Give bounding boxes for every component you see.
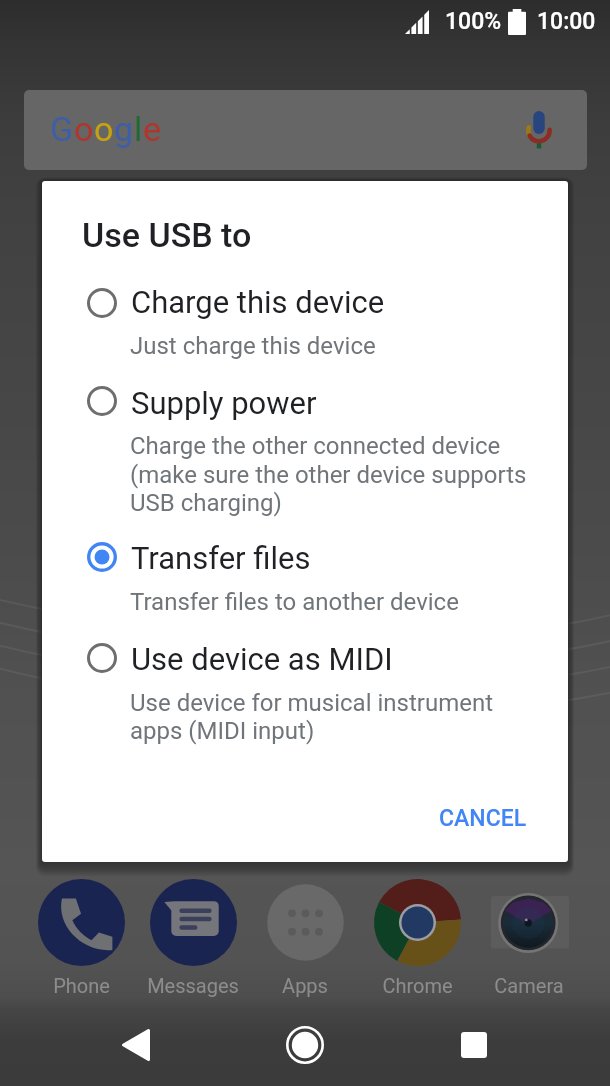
staticText: USB charging) xyxy=(130,489,282,517)
other: Voice search xyxy=(526,111,552,147)
staticText: e xyxy=(143,109,162,149)
staticText: Supply power xyxy=(131,385,317,421)
staticText: Messages xyxy=(147,974,239,997)
staticText: CANCEL xyxy=(439,805,527,832)
staticText: Charge the other connected device xyxy=(130,432,501,460)
button[interactable]: Home xyxy=(272,1012,338,1078)
button[interactable]: Phone xyxy=(25,878,137,997)
staticText: o xyxy=(74,109,94,149)
staticText: Apps xyxy=(282,974,328,997)
button[interactable]: Camera xyxy=(473,878,585,997)
staticText: Transfer files xyxy=(131,540,311,576)
staticText: l xyxy=(134,109,143,149)
button[interactable]: Back xyxy=(103,1012,169,1078)
other: Apps xyxy=(262,879,349,966)
staticText: 100% xyxy=(445,8,502,35)
staticText: Chrome xyxy=(382,974,453,997)
staticText: g xyxy=(114,109,134,149)
button[interactable]: Transfer files xyxy=(42,532,568,626)
button[interactable]: Messages xyxy=(137,878,249,997)
staticText: Transfer files to another device xyxy=(130,588,459,616)
staticText: o xyxy=(94,109,114,149)
button[interactable]: G xyxy=(24,90,587,170)
other: Battery xyxy=(508,9,526,35)
staticText: Just charge this device xyxy=(130,332,376,360)
button[interactable]: Supply power xyxy=(42,376,568,527)
staticText: 10:00 xyxy=(537,8,596,35)
staticText: apps (MIDI input) xyxy=(130,717,315,745)
staticText: Use device for musical instrument xyxy=(130,689,494,717)
staticText: (make sure the other device supports xyxy=(130,461,527,489)
staticText: Charge this device xyxy=(131,284,385,320)
button[interactable]: Apps xyxy=(249,878,361,997)
button[interactable]: CANCEL xyxy=(431,796,535,841)
button[interactable]: Charge this device xyxy=(42,278,568,370)
staticText: Use device as MIDI xyxy=(131,641,393,677)
staticText: G xyxy=(50,109,74,149)
button[interactable]: Recent apps xyxy=(441,1012,507,1078)
staticText: Use USB to xyxy=(82,215,252,255)
button[interactable]: Chrome xyxy=(361,878,473,997)
staticText: Camera xyxy=(494,974,564,997)
staticText: Phone xyxy=(53,974,110,997)
other: Signal xyxy=(405,10,429,34)
button[interactable]: Use device as MIDI xyxy=(42,633,568,755)
